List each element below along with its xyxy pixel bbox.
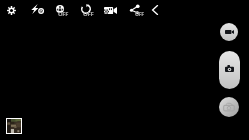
button[interactable]: Record video	[220, 23, 238, 41]
button[interactable]: Switch camera	[219, 97, 239, 117]
staticText: OFF	[135, 10, 144, 17]
button[interactable]: Flash auto	[31, 4, 44, 14]
button[interactable]: Share off	[130, 5, 139, 13]
button[interactable]: HDR off	[56, 5, 64, 13]
button[interactable]: Back	[152, 5, 158, 15]
button[interactable]: Settings	[7, 6, 16, 15]
button[interactable]: Gallery	[6, 118, 22, 134]
staticText: OFF	[83, 10, 94, 18]
staticText: OFF	[58, 10, 69, 18]
button[interactable]: Timer off	[81, 4, 91, 14]
button[interactable]: Video mode	[104, 7, 117, 14]
button[interactable]: Take photo	[219, 51, 240, 89]
